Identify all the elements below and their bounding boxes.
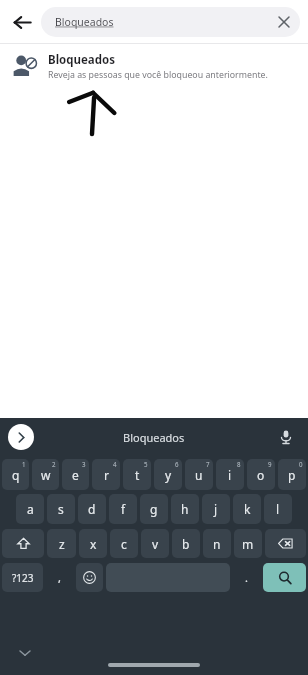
button[interactable]: Ditado por voz [273, 424, 299, 450]
staticText: m [242, 536, 254, 552]
staticText: q [12, 467, 20, 483]
staticText: Reveja as pessoas que você bloqueou ante… [48, 69, 268, 81]
button[interactable]: o [247, 459, 275, 490]
button[interactable]: i [216, 459, 244, 490]
button[interactable]: t [123, 459, 151, 490]
staticText: l [276, 501, 280, 517]
staticText: y [165, 467, 172, 483]
staticText: s [58, 501, 64, 517]
staticText: 9 [268, 460, 272, 468]
button[interactable]: r [92, 459, 120, 490]
staticText: c [121, 536, 127, 552]
button[interactable]: q [2, 459, 29, 490]
staticText: 6 [175, 460, 179, 468]
staticText: r [104, 467, 109, 483]
staticText: p [288, 467, 296, 483]
button[interactable]: e [62, 459, 89, 490]
staticText: d [88, 501, 96, 517]
button[interactable]: h [171, 494, 199, 524]
staticText: 5 [144, 460, 148, 468]
staticText: a [27, 501, 34, 517]
staticText: , [58, 570, 61, 585]
button[interactable]: Expandir [8, 424, 34, 450]
button[interactable]: l [264, 494, 292, 524]
staticText: f [121, 501, 126, 517]
staticText: o [257, 467, 265, 483]
staticText: 0 [299, 460, 303, 468]
button[interactable]: Voltar [6, 6, 38, 38]
staticText: h [181, 501, 189, 517]
staticText: g [150, 501, 158, 517]
button[interactable]: s [47, 494, 75, 524]
button[interactable]: k [233, 494, 261, 524]
button[interactable]: v [141, 529, 169, 558]
staticText: i [228, 467, 232, 483]
staticText: ?123 [12, 571, 34, 585]
button[interactable]: , [46, 563, 73, 592]
button[interactable]: . [233, 563, 260, 592]
button[interactable]: a [16, 494, 44, 524]
button[interactable]: Shift [2, 529, 44, 558]
staticText: 8 [237, 460, 241, 468]
button[interactable]: b [172, 529, 200, 558]
button[interactable]: Bloqueados [41, 7, 300, 37]
staticText: 7 [206, 460, 210, 468]
staticText: Bloqueados [48, 52, 115, 68]
button[interactable]: Limpar [272, 10, 296, 34]
staticText: Bloqueados [55, 15, 114, 29]
button[interactable]: m [234, 529, 262, 558]
staticText: 1 [22, 460, 26, 468]
button[interactable]: y [154, 459, 182, 490]
button[interactable]: Emoji [76, 563, 103, 592]
button[interactable]: z [47, 529, 76, 558]
button[interactable]: Apagar [265, 529, 306, 558]
staticText: n [213, 536, 221, 552]
button[interactable]: p [278, 459, 306, 490]
button[interactable]: Pesquisar [263, 563, 306, 592]
button[interactable]: ?123 [2, 563, 43, 592]
staticText: k [244, 501, 251, 517]
staticText: z [59, 536, 65, 552]
button[interactable]: g [140, 494, 168, 524]
staticText: . [245, 570, 248, 585]
button[interactable]: Ocultar teclado [12, 640, 38, 666]
button[interactable]: c [110, 529, 138, 558]
staticText: u [195, 467, 203, 483]
button[interactable]: n [203, 529, 231, 558]
button[interactable]: f [109, 494, 137, 524]
button[interactable]: Bloqueados [0, 44, 308, 88]
staticText: 4 [113, 460, 117, 468]
button[interactable]: d [78, 494, 106, 524]
staticText: b [182, 536, 190, 552]
staticText: x [90, 536, 97, 552]
button[interactable]: j [202, 494, 230, 524]
staticText: v [152, 536, 159, 552]
staticText: w [41, 467, 51, 483]
button[interactable]: w [32, 459, 59, 490]
staticText: t [135, 467, 140, 483]
staticText: 2 [52, 460, 56, 468]
button[interactable]: u [185, 459, 213, 490]
staticText: j [214, 501, 218, 517]
button[interactable]: x [79, 529, 107, 558]
staticText: 3 [82, 460, 86, 468]
button[interactable]: Bloqueados [34, 418, 273, 456]
staticText: e [72, 467, 79, 483]
staticText: Bloqueados [123, 430, 185, 445]
